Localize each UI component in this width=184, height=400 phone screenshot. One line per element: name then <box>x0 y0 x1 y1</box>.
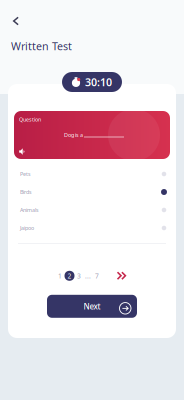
button[interactable]: Skip to last page <box>114 270 128 282</box>
staticText: Jaipoo <box>20 224 34 232</box>
staticText: 3 <box>77 271 81 280</box>
staticText: 30:10 <box>85 75 112 89</box>
staticText: Animals <box>20 206 39 214</box>
button[interactable]: Back <box>6 11 26 31</box>
button[interactable]: 2 <box>64 270 74 281</box>
staticText: 1 <box>58 271 62 280</box>
staticText: Next <box>83 301 100 312</box>
button[interactable]: Animals <box>8 201 176 219</box>
staticText: Pets <box>20 170 31 178</box>
button[interactable]: 3 <box>74 270 83 281</box>
staticText: 7 <box>95 271 99 280</box>
staticText: 2 <box>67 271 71 280</box>
button[interactable]: Pets <box>8 165 176 183</box>
button[interactable]: 7 <box>92 270 101 281</box>
button[interactable]: Birds <box>8 183 176 201</box>
staticText: Question <box>19 116 41 123</box>
staticText: Dog is a <box>64 131 84 139</box>
staticText: Birds <box>20 188 32 196</box>
button[interactable]: Next <box>47 295 137 318</box>
button[interactable]: 1 <box>55 270 64 281</box>
button[interactable]: Jaipoo <box>8 219 176 237</box>
staticText: Written Test <box>11 39 72 53</box>
button[interactable]: Play question audio <box>19 148 26 155</box>
staticText: ... <box>85 271 91 280</box>
